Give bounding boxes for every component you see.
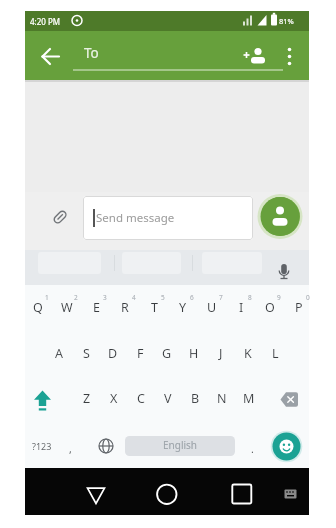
button[interactable]: , (64, 440, 76, 458)
staticText: To (84, 44, 99, 62)
staticText: H (189, 345, 199, 362)
button[interactable]: G (154, 344, 180, 362)
button[interactable]: W (54, 298, 80, 316)
button[interactable] (94, 434, 118, 458)
staticText: O (265, 299, 275, 316)
staticText: J (219, 345, 223, 362)
staticText: 3 (103, 293, 107, 302)
staticText: P (295, 299, 303, 316)
button[interactable] (277, 388, 301, 412)
button[interactable] (38, 44, 64, 70)
button[interactable]: M (236, 389, 262, 407)
button[interactable] (244, 44, 268, 68)
button[interactable]: C (128, 389, 154, 407)
button[interactable]: A (46, 344, 72, 362)
button[interactable]: V (155, 389, 181, 407)
staticText: 6 (190, 293, 194, 302)
staticText: Z (83, 390, 91, 407)
button[interactable]: X (101, 389, 127, 407)
staticText: A (55, 345, 63, 362)
staticText: 1 (45, 293, 49, 302)
staticText: 5 (161, 293, 165, 302)
button[interactable]: ?123 (27, 437, 57, 455)
staticText: C (137, 390, 145, 407)
button[interactable] (73, 40, 243, 72)
button[interactable] (153, 481, 181, 509)
button[interactable]: Y (170, 298, 196, 316)
staticText: , (69, 442, 72, 456)
button[interactable]: B (182, 389, 208, 407)
staticText: S (83, 345, 90, 362)
button[interactable] (228, 481, 256, 509)
button[interactable]: N (209, 389, 235, 407)
staticText: F (137, 345, 144, 362)
staticText: 2 (74, 293, 78, 302)
staticText: M (243, 390, 255, 407)
button[interactable]: L (262, 344, 288, 362)
button[interactable]: R (112, 298, 138, 316)
button[interactable]: Z (74, 389, 100, 407)
button[interactable] (31, 388, 55, 412)
staticText: V (164, 390, 172, 407)
staticText: 4:20 PM (30, 16, 61, 27)
staticText: Y (179, 299, 187, 316)
staticText: . (251, 442, 254, 456)
staticText: L (272, 345, 279, 362)
staticText: U (207, 299, 217, 316)
button[interactable] (261, 197, 300, 236)
button[interactable]: E (83, 298, 109, 316)
button[interactable]: U (199, 298, 225, 316)
staticText: N (217, 390, 227, 407)
button[interactable] (82, 481, 110, 509)
staticText: I (239, 299, 244, 316)
button[interactable] (280, 44, 300, 64)
staticText: 8 (248, 293, 252, 302)
button[interactable] (271, 431, 302, 462)
button[interactable]: D (100, 344, 126, 362)
button[interactable]: S (73, 344, 99, 362)
staticText: 9 (277, 293, 281, 302)
staticText: 4 (132, 293, 136, 302)
staticText: Q (33, 299, 43, 316)
button[interactable]: H (181, 344, 207, 362)
staticText: E (93, 299, 100, 316)
staticText: X (110, 390, 118, 407)
staticText: 0 (306, 293, 310, 302)
button[interactable] (273, 261, 295, 283)
button[interactable] (48, 205, 72, 229)
button[interactable]: Q (25, 298, 51, 316)
button[interactable]: J (208, 344, 234, 362)
button[interactable] (83, 196, 253, 240)
staticText: G (162, 345, 172, 362)
staticText: 7 (219, 293, 223, 302)
button[interactable]: . (246, 440, 258, 458)
staticText: W (61, 299, 73, 316)
staticText: K (244, 345, 252, 362)
button[interactable]: I (228, 298, 254, 316)
button[interactable]: F (127, 344, 153, 362)
staticText: 81% (279, 16, 294, 26)
button[interactable] (125, 436, 235, 456)
staticText: D (108, 345, 118, 362)
button[interactable]: T (141, 298, 167, 316)
staticText: Send message (96, 210, 175, 226)
staticText: ?123 (32, 440, 52, 452)
staticText: R (121, 299, 129, 316)
staticText: T (151, 299, 158, 316)
staticText: B (191, 390, 200, 407)
staticText: English (163, 438, 198, 452)
button[interactable]: K (235, 344, 261, 362)
button[interactable]: O (257, 298, 283, 316)
button[interactable]: P (286, 298, 312, 316)
